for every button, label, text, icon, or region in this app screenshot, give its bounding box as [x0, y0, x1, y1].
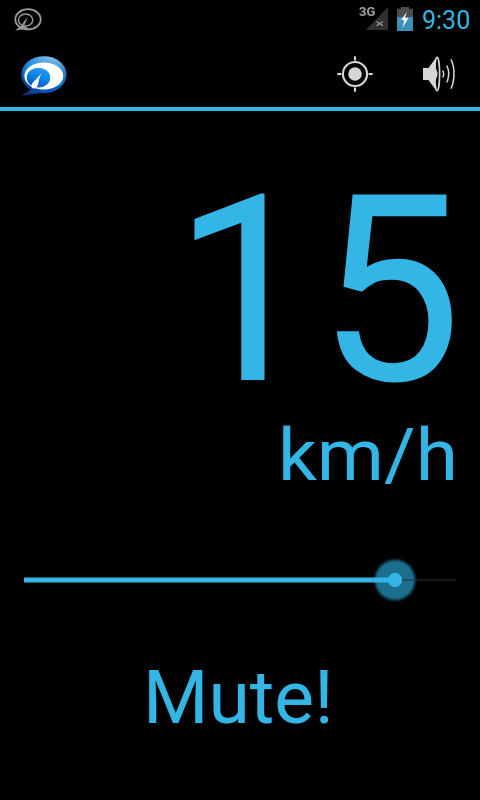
- staticText: 15: [173, 138, 463, 444]
- staticText: Mute!: [143, 653, 334, 741]
- button[interactable]: Volume: [409, 40, 466, 108]
- staticText: 9:30: [422, 6, 471, 35]
- button[interactable]: Speed limit slider: [0, 550, 480, 610]
- button[interactable]: GPS location: [326, 40, 383, 108]
- staticText: km/h: [278, 412, 459, 498]
- button[interactable]: App home: [0, 38, 74, 110]
- staticText: 3G: [359, 4, 376, 19]
